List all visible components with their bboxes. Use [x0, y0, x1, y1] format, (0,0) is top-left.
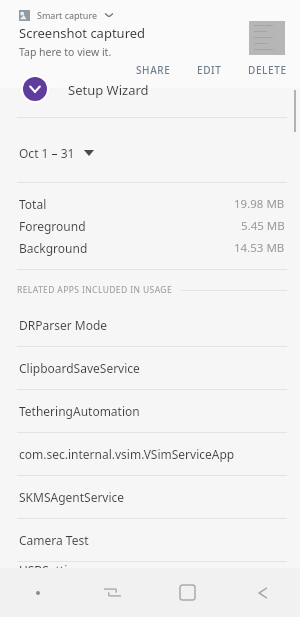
button[interactable]: Total [0, 193, 300, 215]
staticText: 14.53 MB [234, 240, 285, 256]
staticText: ClipboardSaveService [19, 360, 140, 376]
staticText: Setup Wizard [68, 81, 149, 99]
staticText: EDIT [197, 63, 222, 77]
button[interactable]: TetheringAutomation [0, 390, 300, 432]
staticText: SKMSAgentService [19, 489, 125, 505]
button[interactable]: SHARE [123, 59, 184, 81]
button[interactable]: EDIT [184, 59, 235, 81]
staticText: Foreground [19, 218, 86, 234]
staticText: Total [19, 196, 47, 212]
staticText: 19.98 MB [234, 196, 285, 212]
staticText: USBSettings [19, 562, 88, 568]
button[interactable]: Foreground [0, 215, 300, 237]
staticText: TetheringAutomation [19, 403, 140, 419]
button[interactable]: USBSettings [0, 562, 300, 568]
button[interactable]: Camera Test [0, 519, 300, 561]
staticText: SHARE [136, 63, 171, 77]
staticText: Camera Test [19, 532, 89, 548]
staticText: Background [19, 240, 88, 256]
button[interactable]: DRParser Mode [0, 304, 300, 346]
staticText: com.sec.internal.vsim.VSimServiceApp [19, 446, 235, 462]
button[interactable]: com.sec.internal.vsim.VSimServiceApp [0, 433, 300, 475]
staticText: Tap here to view it. [19, 45, 112, 59]
staticText: Oct 1 – 31 [19, 145, 75, 161]
staticText: RELATED APPS INCLUDED IN USAGE [17, 284, 173, 296]
staticText: Smart capture [37, 9, 98, 21]
button[interactable]: Oct 1 – 31 [0, 141, 106, 165]
button[interactable]: SKMSAgentService [0, 476, 300, 518]
staticText: DELETE [248, 63, 287, 77]
staticText: 5.45 MB [241, 218, 285, 234]
button[interactable]: Setup Wizard [0, 88, 300, 117]
staticText: DRParser Mode [19, 317, 108, 333]
button[interactable]: DELETE [235, 59, 300, 81]
button[interactable]: Recents [75, 568, 150, 617]
button[interactable]: Background [0, 237, 300, 259]
button[interactable]: Smart capture [0, 0, 300, 88]
button[interactable]: ClipboardSaveService [0, 347, 300, 389]
staticText: Screenshot captured [19, 24, 146, 42]
button[interactable]: Back [225, 568, 300, 617]
button[interactable]: Home [150, 568, 225, 617]
